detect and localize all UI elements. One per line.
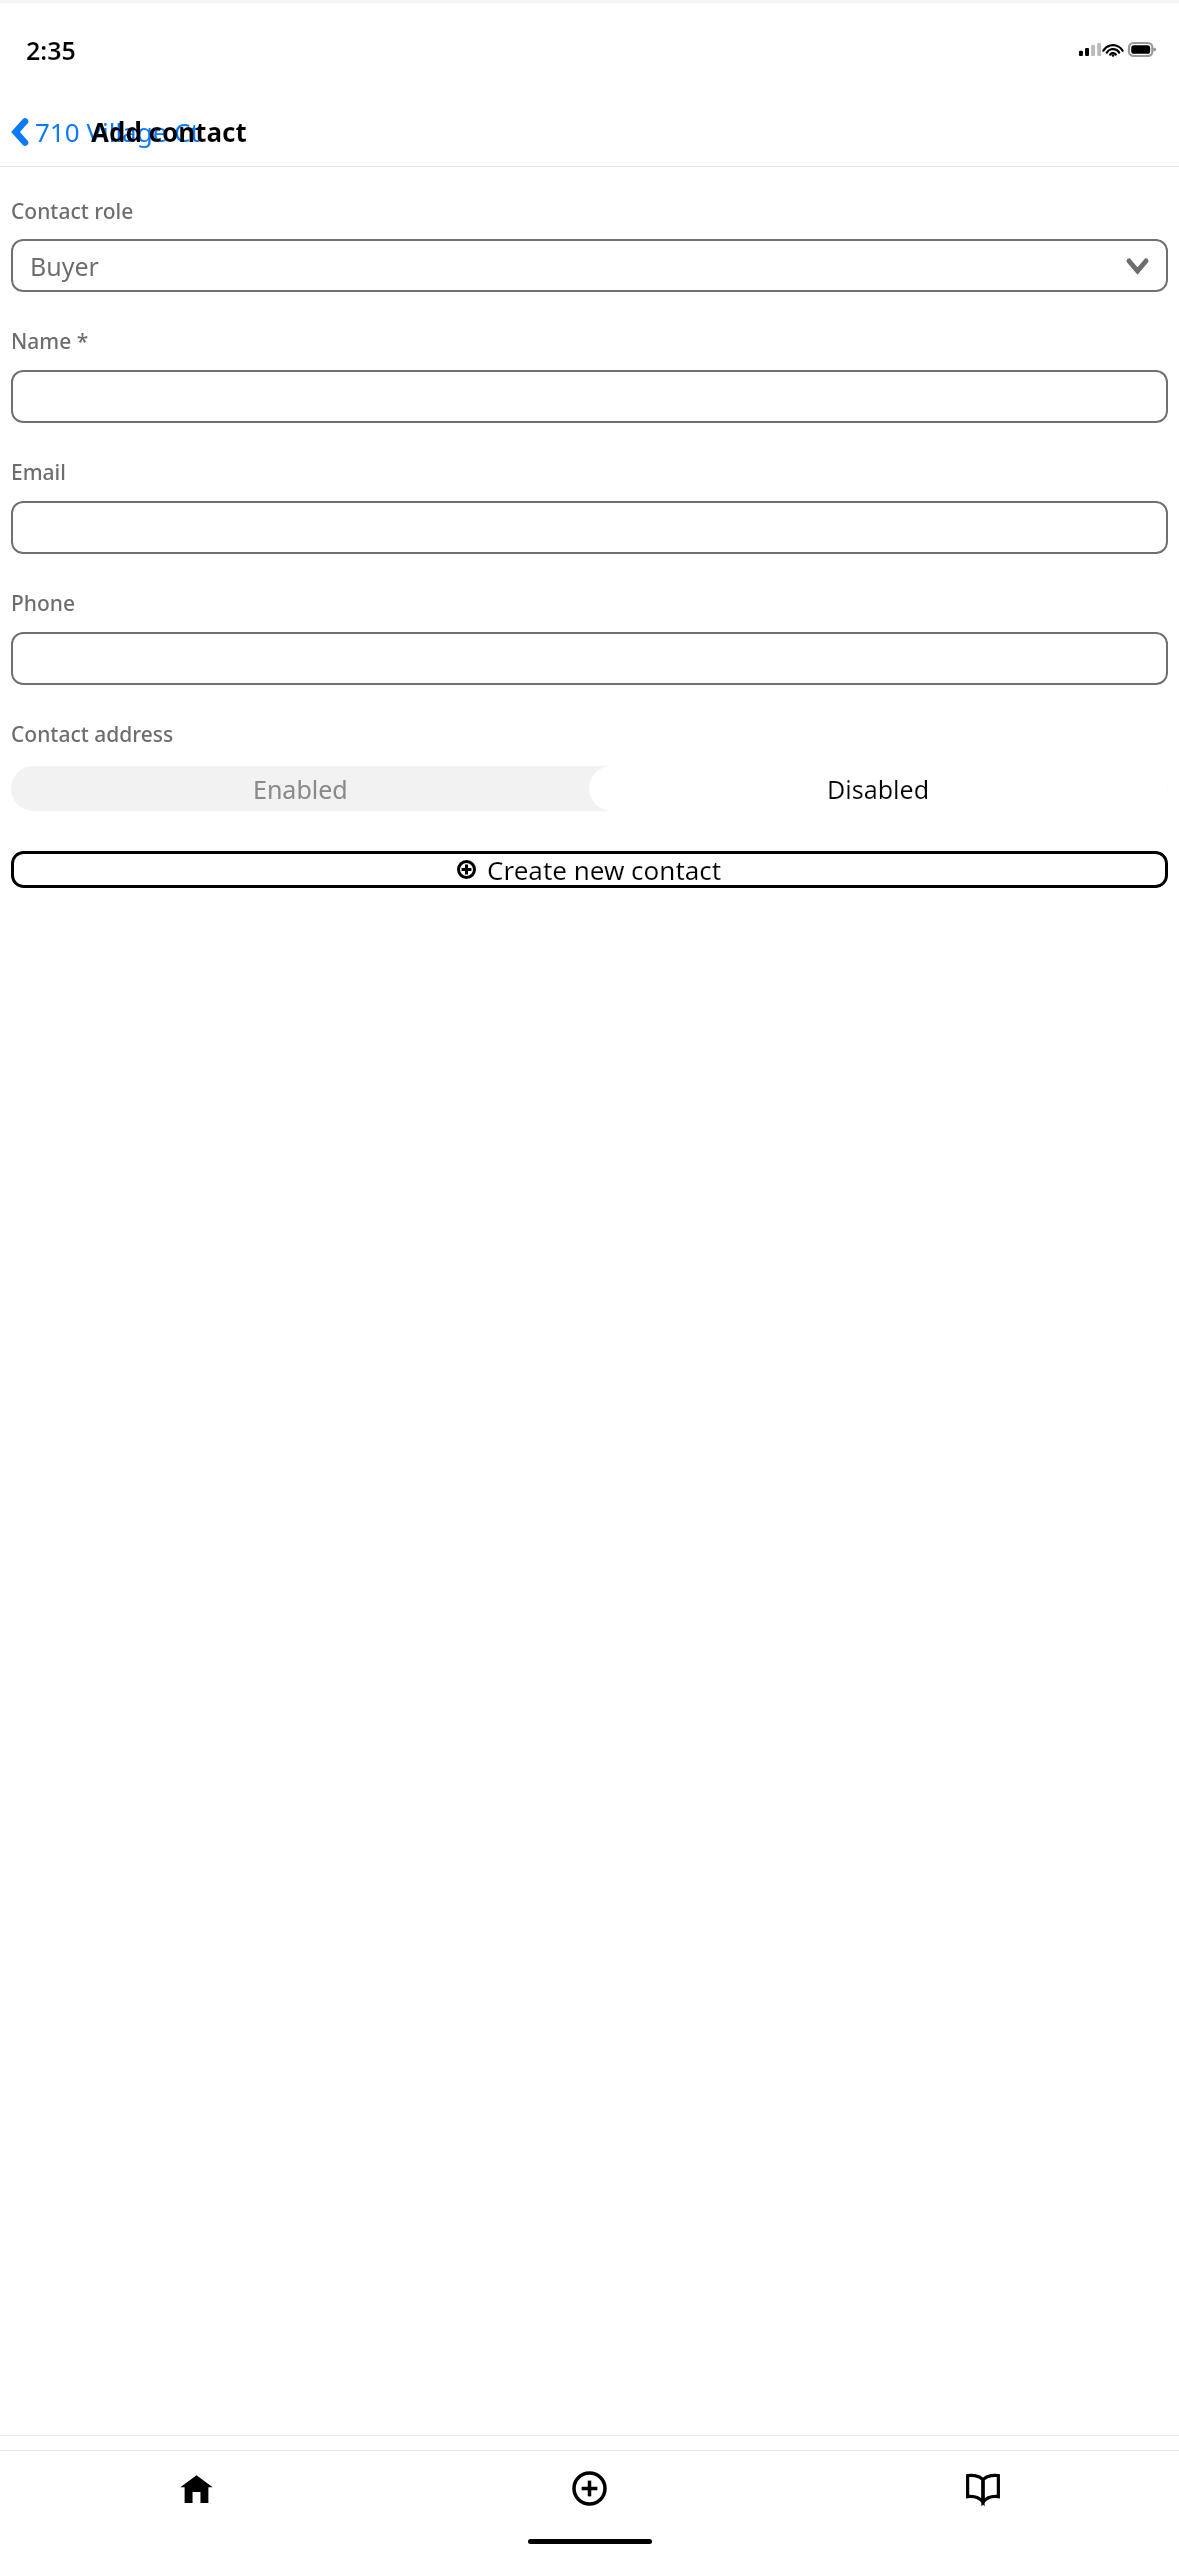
staticText: 2:35 (26, 33, 76, 67)
staticText: Contact address (11, 720, 174, 749)
staticText: Phone (11, 589, 76, 618)
button[interactable]: Home (0, 2451, 393, 2526)
button[interactable] (11, 632, 1168, 685)
staticText: 710 Village Ct (35, 114, 200, 149)
staticText: Add contact (91, 114, 247, 149)
staticText: Enabled (253, 772, 348, 806)
staticText: Name * (11, 327, 89, 356)
staticText: Contact role (11, 197, 134, 226)
button[interactable]: Buyer (11, 239, 1168, 292)
button[interactable] (11, 370, 1168, 423)
staticText: Disabled (827, 772, 930, 806)
button[interactable]: Enabled (11, 766, 589, 811)
staticText: Buyer (30, 249, 99, 283)
staticText: Create new contact (487, 852, 722, 887)
button[interactable]: Library (786, 2451, 1179, 2526)
button[interactable] (11, 501, 1168, 554)
button[interactable]: Create new contact (11, 851, 1168, 888)
staticText: Email (11, 458, 66, 487)
button[interactable]: 710 Village Ct (8, 110, 206, 153)
button[interactable]: Disabled (589, 766, 1168, 811)
button[interactable]: Add (393, 2451, 786, 2526)
